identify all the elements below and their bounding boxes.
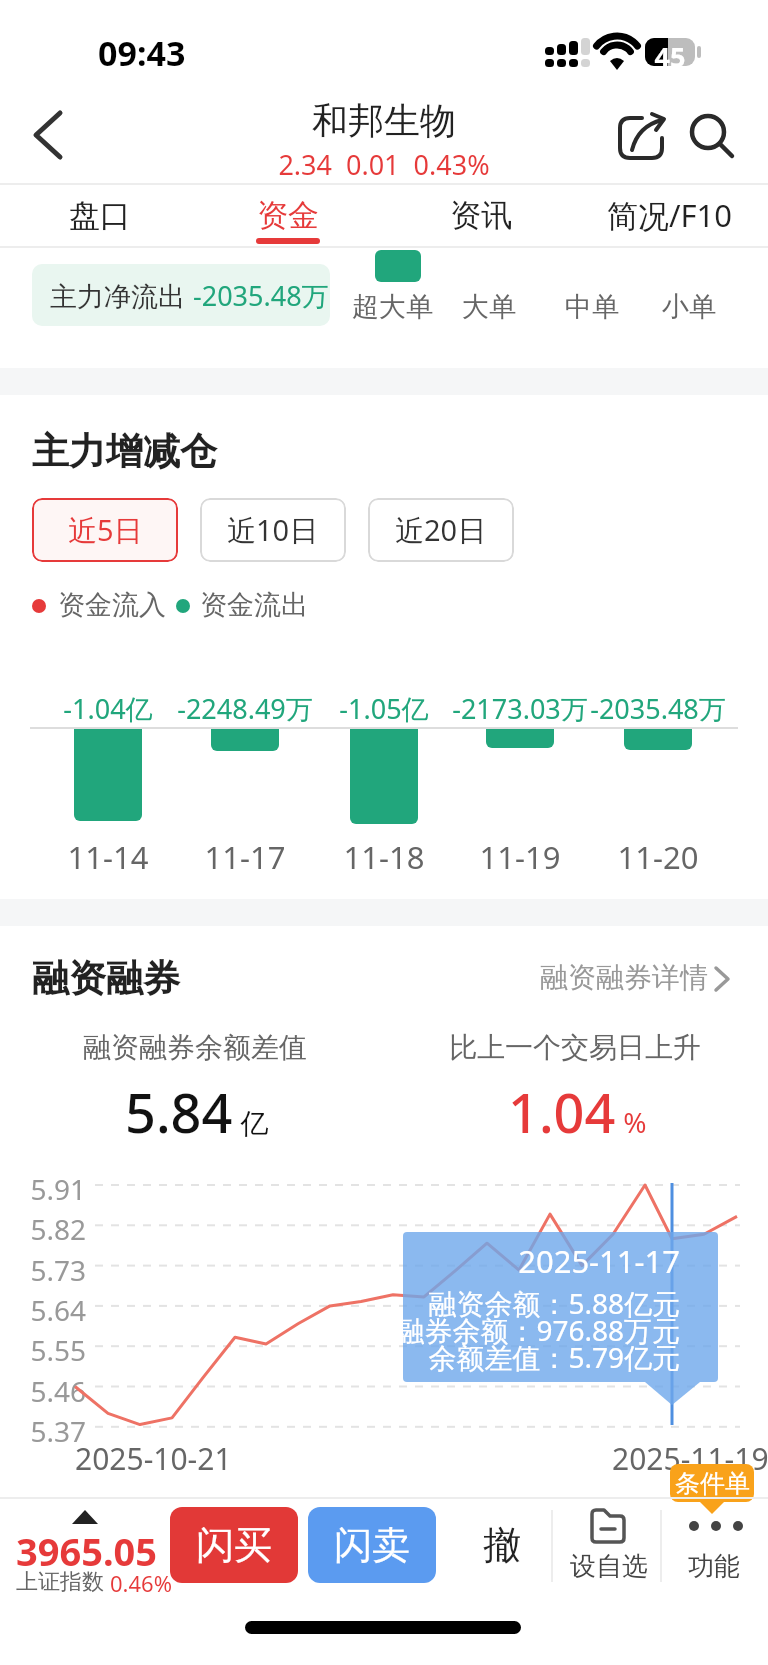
staticText: 资讯 [450, 196, 512, 235]
staticText: -2035.48万 [568, 690, 748, 727]
button[interactable]: 闪买 [170, 1507, 298, 1583]
staticText: 功能 [674, 1550, 754, 1583]
button[interactable]: 撤 [460, 1507, 544, 1583]
staticText: 2025-11-17 [340, 1240, 680, 1282]
staticText: 5.37 [24, 1412, 86, 1450]
staticText: 11-14 [18, 836, 198, 878]
button[interactable]: 主力净流出 [32, 264, 330, 326]
button[interactable] [612, 108, 668, 164]
staticText: 1.04 [508, 1075, 616, 1149]
staticText: 近20日 [395, 510, 487, 550]
staticText: 09:43 [98, 30, 186, 76]
staticText: -2173.03万 [430, 690, 610, 727]
button[interactable]: 盘口 [60, 186, 140, 244]
button[interactable]: 资金 [248, 186, 328, 244]
staticText: 融资融券详情 [540, 960, 708, 995]
staticText: 条件单 [675, 1468, 750, 1499]
staticText: 盘口 [69, 196, 131, 235]
button[interactable]: 简况/F10 [590, 186, 750, 244]
staticText: 3965.05 [16, 1525, 158, 1577]
staticText: 5.46 [24, 1372, 86, 1410]
button[interactable]: 功能 [666, 1500, 762, 1595]
staticText: 资金流出 [200, 588, 308, 622]
staticText: 设自选 [569, 1550, 649, 1583]
button[interactable] [20, 105, 80, 165]
staticText: 45 [645, 38, 695, 75]
staticText: 11-18 [294, 836, 474, 878]
staticText: 5.82 [24, 1210, 86, 1248]
staticText: 主力增减仓 [32, 428, 217, 475]
staticText: 上证指数 [16, 1568, 104, 1596]
button[interactable] [684, 108, 740, 164]
staticText: 11-20 [568, 836, 748, 878]
staticText: 中单 [565, 290, 619, 324]
staticText: 11-19 [430, 836, 610, 878]
staticText: 闪卖 [334, 1521, 410, 1569]
button[interactable]: 条件单 [670, 1464, 754, 1502]
button[interactable]: 融资融券详情 [540, 960, 736, 995]
staticText: 简况/F10 [607, 194, 733, 236]
staticText: 亿 [233, 1103, 269, 1141]
staticText: 2025-10-21 [75, 1438, 232, 1479]
staticText: 融资余额：5.88亿元 [340, 1284, 680, 1322]
staticText: 闪买 [196, 1521, 272, 1569]
staticText: 超大单 [352, 290, 433, 324]
staticText: 融资融券 [32, 955, 180, 1002]
staticText: 小单 [662, 290, 716, 324]
staticText: % [616, 1103, 647, 1141]
staticText: 资金 [257, 196, 319, 235]
staticText: 5.84 [125, 1075, 233, 1149]
staticText: 融券余额：976.88万元 [340, 1311, 680, 1349]
staticText: 近10日 [227, 510, 319, 550]
staticText: 11-17 [155, 836, 335, 878]
staticText: -1.05亿 [294, 690, 474, 727]
staticText: 5.55 [24, 1331, 86, 1369]
button[interactable]: 设自选 [560, 1500, 656, 1595]
staticText: 5.64 [24, 1291, 86, 1329]
button[interactable]: 近20日 [368, 498, 514, 562]
staticText: -1.04亿 [18, 690, 198, 727]
staticText: 2.34 0.01 0.43% [0, 146, 768, 183]
staticText: 近5日 [68, 510, 143, 550]
button[interactable]: 资讯 [441, 186, 521, 244]
staticText: -2248.49万 [155, 690, 335, 727]
button[interactable]: 3965.05 [0, 1500, 165, 1600]
staticText: 大单 [462, 290, 516, 324]
staticText: 2025-11-19 [612, 1438, 768, 1479]
staticText: 5.73 [24, 1251, 86, 1289]
staticText: 资金流入 [58, 588, 166, 622]
staticText: 比上一个交易日上升 [380, 1030, 768, 1065]
staticText: 和邦生物 [0, 98, 768, 143]
button[interactable]: 闪卖 [308, 1507, 436, 1583]
staticText: 撤 [483, 1521, 521, 1569]
staticText: -2035.48万 [193, 277, 329, 314]
button[interactable]: 近10日 [200, 498, 346, 562]
staticText: 0.46% [110, 1568, 172, 1598]
staticText: 5.91 [24, 1170, 86, 1208]
staticText: 融资融券余额差值 [0, 1030, 390, 1065]
staticText: 余额差值：5.79亿元 [340, 1338, 680, 1376]
staticText: 主力净流出 [50, 277, 193, 314]
button[interactable]: 近5日 [32, 498, 178, 562]
